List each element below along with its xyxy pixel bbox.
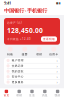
staticText: › xyxy=(56,69,57,74)
button[interactable]: 理财 xyxy=(13,90,26,97)
staticText: 更多服务 xyxy=(12,80,24,84)
button[interactable]: 我的贷款 xyxy=(4,69,60,74)
staticText: 我的贷款 xyxy=(12,70,24,73)
staticText: › xyxy=(56,63,57,68)
button[interactable]: 账户管理 xyxy=(4,58,60,63)
staticText: 理财 xyxy=(36,53,42,56)
staticText: 信用卡 xyxy=(49,53,58,56)
staticText: 今日收益 +12.40 xyxy=(7,37,31,41)
button[interactable]: 我的 xyxy=(51,90,64,97)
button[interactable]: 缴费 xyxy=(17,47,32,56)
button[interactable]: 首页 xyxy=(0,90,13,97)
staticText: 查看明细 xyxy=(43,37,55,41)
staticText: 9:41 xyxy=(4,0,11,6)
staticText: 交易记录 xyxy=(12,64,24,67)
staticText: 我的 xyxy=(55,94,61,97)
staticText: › xyxy=(56,79,57,85)
staticText: 生活 xyxy=(29,94,35,97)
button[interactable]: 生活 xyxy=(26,90,38,97)
staticText: 安全中心 xyxy=(12,75,24,78)
staticText: 缴费 xyxy=(22,53,28,56)
staticText: › xyxy=(56,74,57,79)
staticText: 中国银行 · 手机银行 xyxy=(4,7,47,14)
button[interactable]: 转账 xyxy=(3,47,17,56)
button[interactable]: 理财 xyxy=(32,47,46,56)
button[interactable]: 消息 xyxy=(38,90,51,97)
staticText: ▮▮ ▮ xyxy=(56,1,60,4)
staticText: 消息 xyxy=(42,94,48,97)
staticText: 转账 xyxy=(7,53,13,56)
button[interactable]: 信用卡 xyxy=(46,47,61,56)
button[interactable]: 交易记录 xyxy=(4,63,60,68)
staticText: › xyxy=(56,58,57,63)
button[interactable]: 更多服务 xyxy=(4,79,60,84)
button[interactable]: 总资产 (元) xyxy=(4,18,60,45)
staticText: 总资产 (元) xyxy=(7,21,22,24)
staticText: 128,450.00 xyxy=(7,26,43,35)
staticText: 账户管理 xyxy=(12,59,24,62)
staticText: 理财 xyxy=(16,94,22,97)
staticText: 首页 xyxy=(3,94,9,97)
button[interactable]: 安全中心 xyxy=(4,74,60,79)
